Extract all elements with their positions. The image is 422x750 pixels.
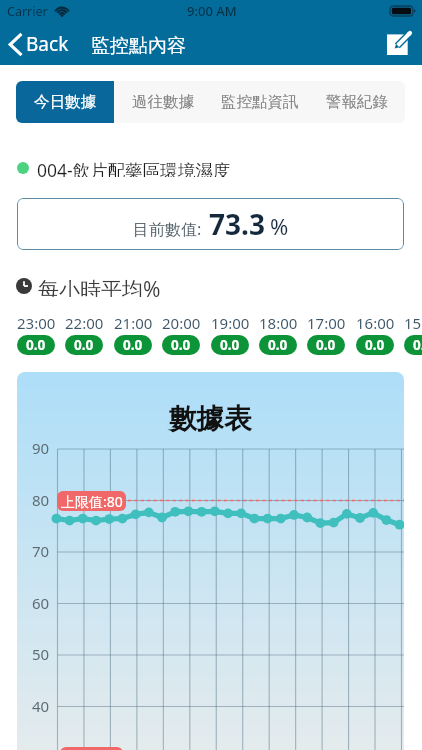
- staticText: 數據表: [169, 402, 252, 437]
- button[interactable]: 0.0: [307, 335, 345, 355]
- staticText: 17:00: [307, 313, 346, 333]
- staticText: 0.0: [171, 336, 191, 354]
- staticText: 監控點資訊: [221, 92, 299, 112]
- button[interactable]: Back: [0, 28, 77, 60]
- staticText: 目前數值:: [133, 218, 202, 240]
- staticText: 60: [32, 593, 50, 613]
- staticText: 0.0: [413, 336, 422, 354]
- staticText: 19:00: [211, 313, 250, 333]
- staticText: Carrier: [7, 3, 48, 20]
- staticText: 0.0: [316, 336, 336, 354]
- button[interactable]: Edit: [382, 27, 418, 60]
- staticText: %: [270, 211, 289, 241]
- staticText: 0.0: [220, 336, 240, 354]
- button[interactable]: 0.0: [259, 335, 297, 355]
- button[interactable]: 過往數據: [114, 81, 211, 123]
- button[interactable]: 0.0: [65, 335, 103, 355]
- button[interactable]: 今日數據: [16, 81, 114, 123]
- staticText: 9:00 AM: [187, 2, 237, 20]
- button[interactable]: 0.0: [404, 335, 422, 355]
- staticText: 0.0: [268, 336, 288, 354]
- staticText: 004-飲片配藥區環境濕度: [37, 158, 231, 177]
- staticText: 22:00: [65, 313, 104, 333]
- staticText: 23:00: [17, 313, 56, 333]
- button[interactable]: 0.0: [17, 335, 55, 355]
- staticText: 0.0: [74, 336, 94, 354]
- button[interactable]: 0.0: [114, 335, 152, 355]
- staticText: 20:00: [162, 313, 201, 333]
- button[interactable]: 0.0: [356, 335, 394, 355]
- staticText: 每小時平均%: [38, 275, 161, 297]
- staticText: 上限值:80: [61, 492, 123, 511]
- staticText: 21:00: [114, 313, 153, 333]
- staticText: 過往數據: [132, 92, 194, 112]
- staticText: 0.0: [26, 336, 46, 354]
- staticText: 警報紀錄: [326, 92, 388, 112]
- staticText: Back: [26, 31, 69, 57]
- staticText: 90: [32, 438, 50, 458]
- button[interactable]: 0.0: [211, 335, 249, 355]
- button[interactable]: 警報紀錄: [308, 81, 405, 123]
- staticText: 今日數據: [34, 92, 96, 112]
- staticText: 40: [32, 696, 50, 716]
- staticText: 50: [32, 644, 50, 664]
- staticText: 18:00: [259, 313, 298, 333]
- staticText: 70: [32, 541, 50, 561]
- staticText: 15:00: [404, 313, 422, 333]
- staticText: 監控點內容: [91, 34, 186, 58]
- button[interactable]: 監控點資訊: [211, 81, 308, 123]
- staticText: 73.3: [209, 205, 265, 243]
- button[interactable]: 0.0: [162, 335, 200, 355]
- staticText: 0.0: [365, 336, 385, 354]
- staticText: 16:00: [356, 313, 395, 333]
- staticText: 0.0: [123, 336, 143, 354]
- staticText: 80: [32, 490, 50, 510]
